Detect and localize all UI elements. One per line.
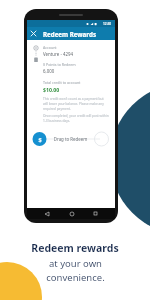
staticText: This credit won't count as a payment but… bbox=[43, 97, 109, 111]
staticText: 12:30 bbox=[103, 22, 112, 26]
staticText: $ Points to Redeem bbox=[43, 62, 76, 67]
staticText: 6,000 bbox=[43, 68, 55, 74]
button[interactable]: $ bbox=[32, 131, 109, 147]
button[interactable]: Home bbox=[66, 208, 77, 219]
staticText: Account bbox=[43, 45, 57, 50]
staticText: Drag to Redeem bbox=[32, 136, 109, 142]
staticText: Redeem rewards bbox=[31, 241, 119, 255]
staticText: convenience. bbox=[46, 271, 105, 284]
staticText: at your own bbox=[49, 257, 102, 270]
staticText: Total credit to account bbox=[43, 80, 81, 85]
staticText: Once completed, your credit will post wi… bbox=[43, 114, 109, 123]
staticText: Redeem Rewards bbox=[43, 30, 96, 38]
staticText: $10.00 bbox=[43, 86, 60, 93]
button[interactable]: Close bbox=[27, 27, 40, 40]
button[interactable]: Recent apps bbox=[90, 208, 101, 219]
staticText: $ bbox=[38, 136, 42, 143]
staticText: Venture - 4294 bbox=[43, 51, 73, 57]
button[interactable]: Back bbox=[41, 208, 52, 219]
